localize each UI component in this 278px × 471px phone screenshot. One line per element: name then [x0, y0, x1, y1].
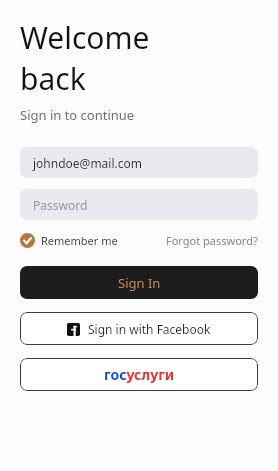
staticText: Remember me	[41, 233, 118, 248]
button[interactable]: Password	[20, 189, 258, 220]
staticText: Sign In	[118, 274, 161, 292]
staticText: Forgot password?	[166, 233, 258, 248]
staticText: Welcome	[20, 17, 150, 58]
button[interactable]: Sign In	[20, 266, 258, 299]
staticText: Password	[33, 197, 88, 213]
button[interactable]: johndoe@mail.com	[20, 147, 258, 178]
button[interactable]: Sign in with Gosuslugi	[20, 358, 258, 391]
staticText: johndoe@mail.com	[33, 155, 142, 171]
staticText: Sign in to continue	[20, 106, 135, 124]
staticText: госуслуги	[104, 365, 175, 384]
staticText: back	[20, 58, 86, 99]
button[interactable]: Forgot password?	[166, 230, 258, 251]
button[interactable]: Sign in with Facebook	[20, 312, 258, 345]
staticText: Sign in with Facebook	[88, 321, 211, 337]
button[interactable]: Remember me	[20, 230, 118, 251]
